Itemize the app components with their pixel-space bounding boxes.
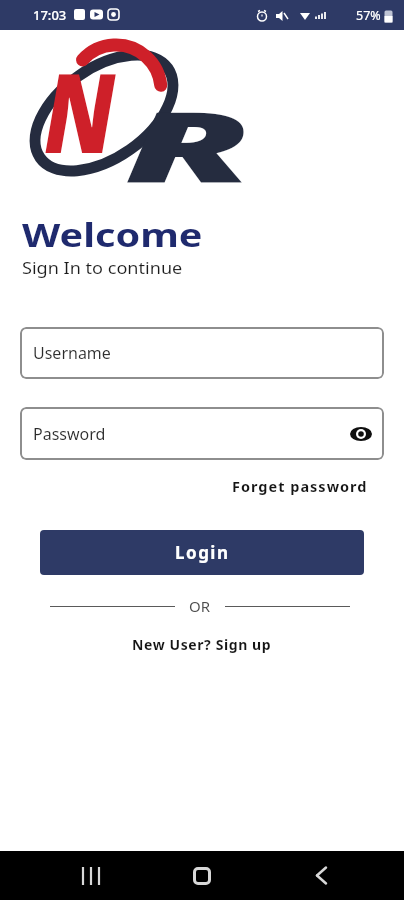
button[interactable]	[193, 867, 211, 885]
staticText: Password	[33, 423, 106, 445]
button[interactable]	[81, 867, 101, 885]
button[interactable]: Username	[20, 327, 384, 379]
button[interactable]: Password	[20, 407, 384, 460]
button[interactable]	[316, 867, 327, 884]
staticText: Sign In to continue	[22, 257, 182, 279]
staticText: Welcome	[22, 212, 203, 257]
staticText: N	[44, 35, 115, 185]
staticText: R	[124, 77, 252, 210]
staticText: Username	[33, 342, 111, 364]
button[interactable]: Forget password	[232, 476, 368, 496]
button[interactable]: New User? Sign up	[132, 635, 272, 654]
staticText: OR	[189, 596, 211, 616]
staticText: 17:03	[33, 6, 67, 24]
button[interactable]: Login	[40, 530, 364, 575]
staticText: 57%	[356, 7, 381, 24]
staticText: Login	[175, 541, 230, 564]
